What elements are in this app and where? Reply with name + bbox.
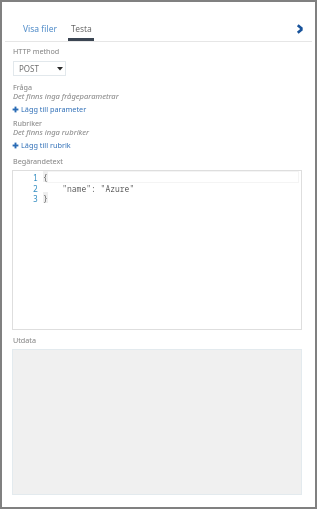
staticText: "name": "Azure" [43,183,135,194]
staticText: Det finns inga rubriker [13,127,90,137]
button[interactable]: Lägg till rubrik [12,140,71,150]
staticText: Det finns inga frågeparametrar [13,91,119,101]
staticText: Lägg till parameter [21,104,87,114]
staticText: Testa [71,23,92,35]
staticText: Rubriker [13,118,43,128]
button[interactable]: Lägg till parameter [12,104,87,114]
staticText: 3 [33,193,38,204]
staticText: Lägg till rubrik [21,140,71,150]
button[interactable]: POST [13,61,66,76]
staticText: POST [19,63,39,74]
button[interactable]: Expand [288,17,312,41]
staticText: Utdata [13,335,36,345]
staticText: 2 [33,183,38,194]
staticText: Fråga [13,82,33,92]
staticText: Visa filer [23,23,57,35]
staticText: } [43,193,48,204]
staticText: 1 [33,172,38,183]
staticText: HTTP method [13,46,60,56]
button[interactable]: Testa [65,16,98,42]
staticText: Begärandetext [13,156,63,166]
staticText: { [43,172,48,183]
button[interactable]: Visa filer [17,16,63,42]
